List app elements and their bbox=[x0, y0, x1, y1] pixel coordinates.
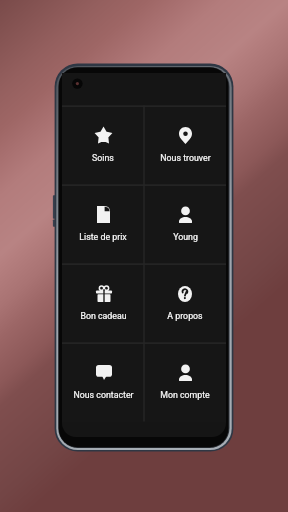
button[interactable]: Liste de prix bbox=[62, 185, 144, 264]
staticText: Nous trouver bbox=[160, 153, 211, 163]
button[interactable]: A propos bbox=[144, 264, 226, 343]
button[interactable]: Bon cadeau bbox=[62, 264, 144, 343]
staticText: A propos bbox=[167, 311, 203, 321]
staticText: Bon cadeau bbox=[80, 311, 127, 321]
button[interactable]: Mon compte bbox=[144, 343, 226, 422]
staticText: Liste de prix bbox=[79, 232, 127, 242]
button[interactable]: Nous trouver bbox=[144, 106, 226, 185]
staticText: Soins bbox=[92, 153, 114, 163]
staticText: Young bbox=[173, 232, 198, 242]
staticText: Mon compte bbox=[160, 390, 210, 400]
button[interactable]: Soins bbox=[62, 106, 144, 185]
button[interactable]: Young bbox=[144, 185, 226, 264]
button[interactable]: Nous contacter bbox=[62, 343, 144, 422]
staticText: Nous contacter bbox=[73, 390, 134, 400]
